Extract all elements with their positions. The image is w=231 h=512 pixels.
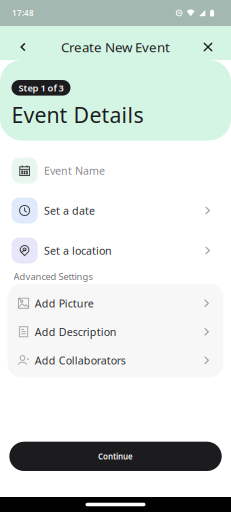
- button[interactable]: Add Picture: [8, 289, 223, 317]
- staticText: Set a location: [44, 243, 112, 258]
- staticText: Step 1 of 3: [18, 82, 63, 94]
- button[interactable]: Continue: [9, 442, 222, 471]
- button[interactable]: Set a location: [0, 230, 231, 270]
- button[interactable]: Set a date: [0, 190, 231, 230]
- staticText: Continue: [98, 451, 133, 462]
- staticText: Set a date: [44, 203, 95, 218]
- staticText: Add Description: [35, 325, 117, 339]
- staticText: 17:48: [12, 8, 34, 18]
- button[interactable]: Back: [8, 32, 38, 62]
- button[interactable]: Add Collaborators: [8, 346, 223, 374]
- staticText: Advanced Settings: [14, 270, 93, 283]
- staticText: Add Collaborators: [35, 353, 126, 367]
- button[interactable]: Add Description: [8, 317, 223, 346]
- staticText: Event Details: [11, 101, 143, 129]
- staticText: Create New Event: [61, 38, 170, 56]
- button[interactable]: Close: [193, 32, 223, 62]
- staticText: Add Picture: [35, 296, 94, 310]
- button[interactable]: Event Name: [0, 150, 231, 190]
- staticText: Event Name: [44, 163, 105, 178]
